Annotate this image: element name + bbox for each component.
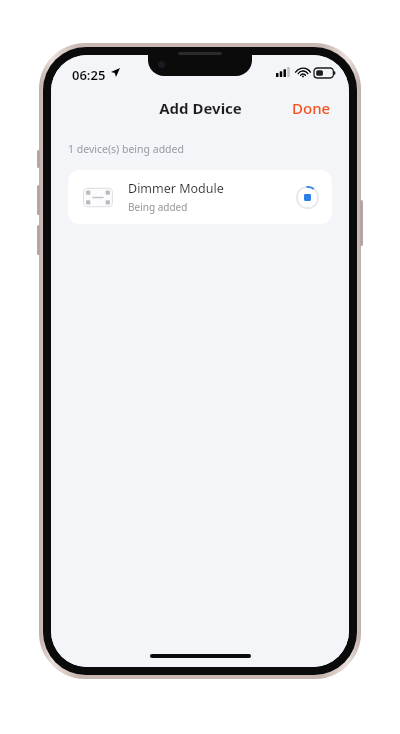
staticText: Add Device <box>159 98 242 118</box>
staticText: Done <box>292 98 331 118</box>
staticText: Dimmer Module <box>128 180 224 197</box>
button[interactable]: Done <box>286 94 337 122</box>
staticText: Being added <box>128 200 188 214</box>
staticText: 1 device(s) being added <box>68 142 184 156</box>
staticText: 06:25 <box>72 66 106 84</box>
button[interactable]: Stop adding device <box>294 184 320 210</box>
button[interactable]: Dimmer Module <box>68 170 332 224</box>
